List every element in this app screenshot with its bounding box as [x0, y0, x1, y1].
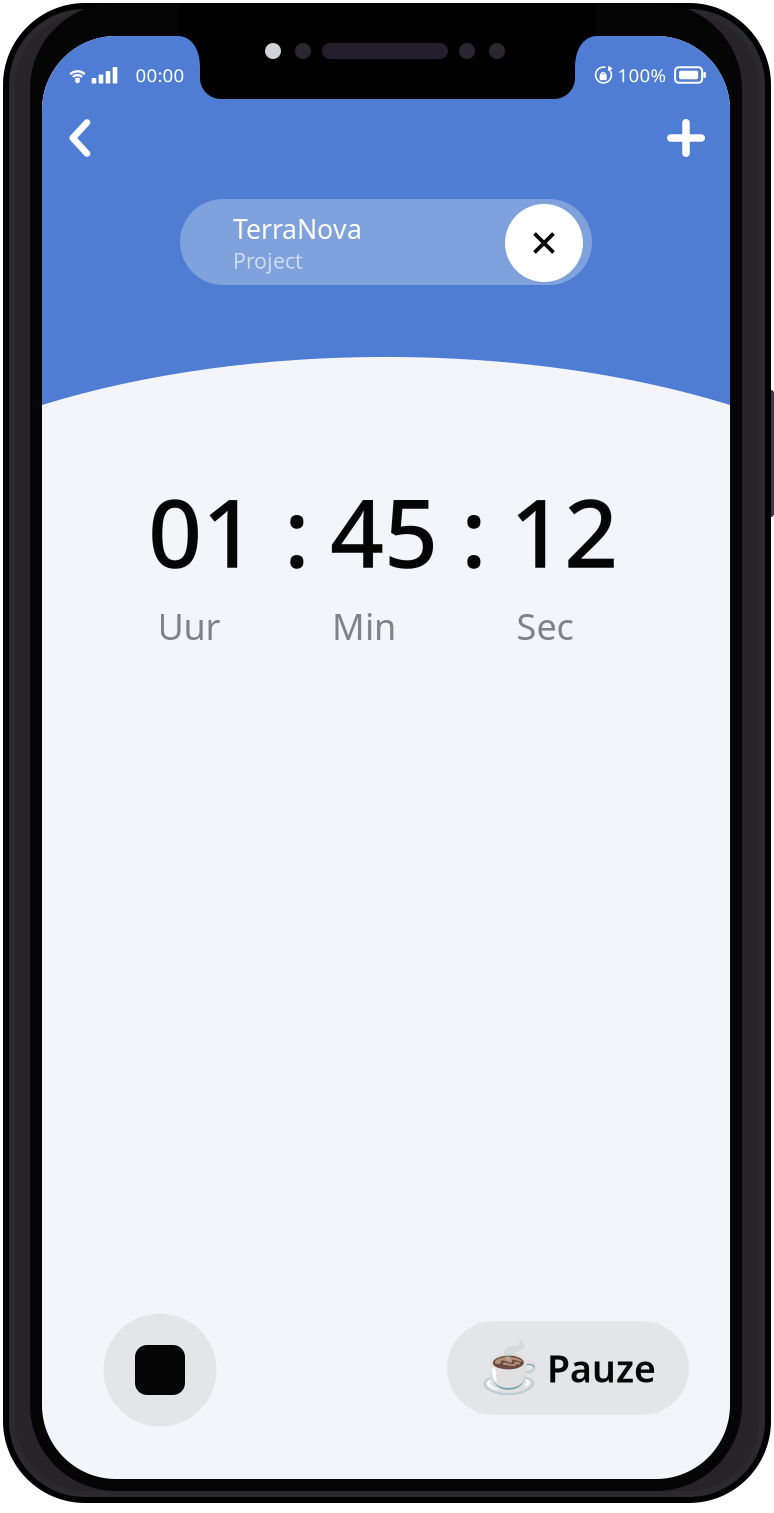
staticText: : — [284, 468, 310, 594]
staticText: 01 — [148, 468, 256, 594]
button[interactable]: TerraNova — [180, 199, 592, 285]
staticText: ☕ — [480, 1340, 541, 1396]
staticText: Min — [332, 602, 396, 650]
staticText: 100% — [617, 63, 666, 87]
staticText: TerraNova — [233, 211, 362, 246]
staticText: : — [461, 468, 487, 594]
staticText: Project — [233, 246, 303, 275]
staticText: Sec — [516, 602, 573, 650]
button[interactable]: New entry — [654, 106, 718, 170]
staticText: Uur — [157, 602, 220, 650]
staticText: 00:00 — [135, 63, 184, 87]
staticText: Pauze — [547, 1343, 656, 1393]
button[interactable]: ☕ — [447, 1321, 689, 1415]
staticText: 12 — [510, 468, 618, 594]
button[interactable]: Stop — [103, 1313, 216, 1426]
button[interactable]: Back — [48, 106, 112, 170]
staticText: 45 — [330, 468, 438, 594]
button[interactable]: Stop tracking this project — [505, 204, 583, 282]
